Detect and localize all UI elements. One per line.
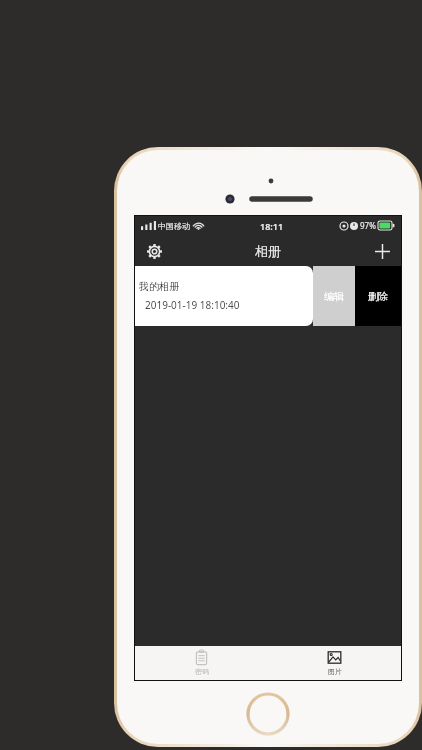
button[interactable]: Settings — [141, 238, 167, 264]
staticText: 18:11 — [260, 220, 284, 232]
button[interactable]: 我的相册 — [135, 266, 313, 326]
button[interactable]: 密码 — [135, 646, 268, 680]
staticText: 相册 — [255, 243, 281, 259]
staticText: 编辑 — [324, 290, 344, 303]
staticText: 删除 — [368, 290, 388, 303]
staticText: 97% — [360, 220, 376, 231]
button[interactable]: 图片 — [268, 646, 401, 680]
staticText: 我的相册 — [139, 280, 179, 293]
staticText: 密码 — [195, 667, 209, 676]
staticText: 2019-01-19 18:10:40 — [145, 298, 240, 312]
button[interactable]: 编辑 — [313, 266, 355, 326]
staticText: 图片 — [328, 667, 342, 676]
button[interactable]: 删除 — [355, 266, 401, 326]
button[interactable]: Add album — [369, 238, 395, 264]
staticText: 中国移动 — [158, 221, 190, 231]
